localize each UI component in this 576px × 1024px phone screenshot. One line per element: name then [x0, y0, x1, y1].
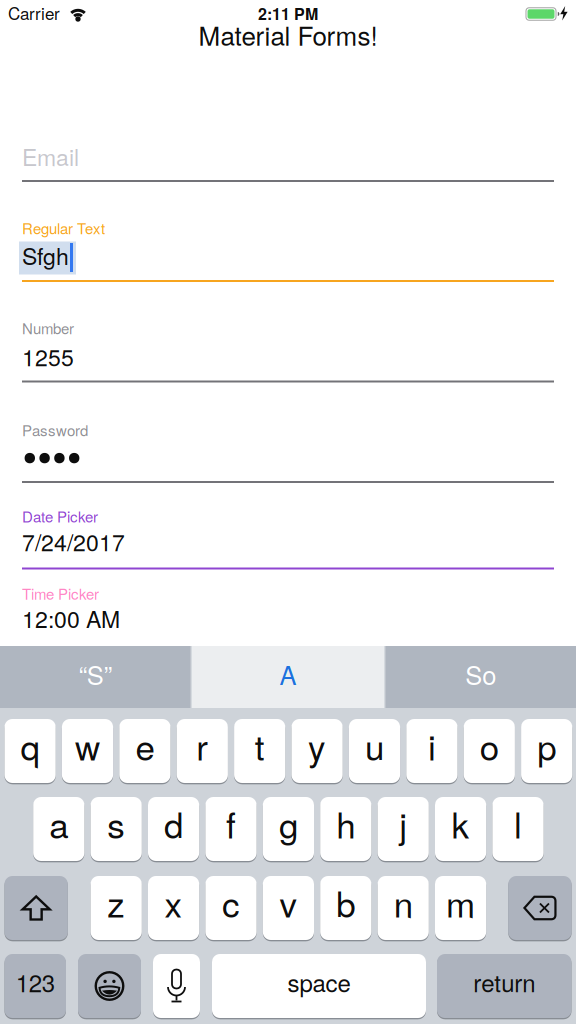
staticText: 123 — [16, 965, 55, 999]
staticText: r — [196, 720, 208, 770]
button[interactable]: Time Picker — [0, 583, 576, 645]
button[interactable]: b — [320, 876, 371, 940]
button[interactable]: j — [378, 797, 429, 861]
button[interactable]: u — [349, 719, 400, 783]
staticText: 1255 — [22, 340, 74, 373]
button[interactable]: l — [492, 797, 544, 861]
staticText: 7/24/2017 — [22, 525, 125, 558]
staticText: Time Picker — [22, 583, 99, 604]
button[interactable]: f — [205, 797, 257, 861]
button[interactable]: h — [320, 797, 371, 861]
staticText: “S” — [79, 656, 112, 692]
staticText: v — [279, 877, 297, 927]
staticText: h — [336, 798, 355, 848]
button[interactable]: c — [205, 876, 257, 940]
staticText: o — [480, 720, 499, 770]
button[interactable]: k — [435, 797, 486, 861]
staticText: s — [107, 798, 125, 848]
button[interactable]: n — [378, 876, 429, 940]
button[interactable]: s — [91, 797, 142, 861]
button[interactable]: a — [33, 797, 84, 861]
staticText: p — [537, 720, 556, 770]
staticText: Sfgh — [22, 239, 69, 271]
staticText: k — [452, 798, 470, 848]
staticText: 12:00 AM — [22, 601, 120, 634]
button[interactable]: p — [521, 719, 572, 783]
button[interactable]: d — [148, 797, 199, 861]
staticText: Password — [22, 419, 88, 440]
button[interactable]: “S” — [0, 646, 190, 708]
staticText: w — [75, 720, 100, 770]
staticText: So — [465, 656, 496, 692]
staticText: Regular Text — [22, 217, 105, 238]
button[interactable]: r — [177, 719, 228, 783]
button[interactable]: Date Picker — [0, 505, 576, 569]
staticText: z — [107, 877, 125, 927]
button[interactable]: t — [234, 719, 285, 783]
staticText: x — [165, 877, 183, 927]
button[interactable]: Numbers — [4, 954, 66, 1018]
button[interactable]: Dictation — [153, 954, 200, 1018]
staticText: n — [394, 877, 413, 927]
button[interactable]: w — [62, 719, 113, 783]
staticText: i — [428, 720, 436, 770]
staticText: return — [473, 965, 535, 999]
button[interactable]: Shift — [4, 876, 68, 940]
button[interactable]: x — [148, 876, 199, 940]
staticText: 2:11 PM — [258, 2, 318, 25]
staticText: b — [336, 877, 355, 927]
staticText: l — [514, 798, 522, 848]
staticText: space — [287, 965, 350, 999]
button[interactable]: Number — [0, 317, 576, 383]
staticText: y — [308, 720, 326, 770]
button[interactable]: g — [263, 797, 314, 861]
staticText: e — [135, 720, 154, 770]
staticText: j — [399, 798, 407, 848]
staticText: Date Picker — [22, 505, 98, 527]
button[interactable]: v — [263, 876, 314, 940]
button[interactable]: space — [212, 954, 426, 1018]
staticText: d — [164, 798, 183, 848]
staticText: u — [365, 720, 384, 770]
staticText: Carrier — [8, 0, 60, 25]
staticText: q — [21, 720, 40, 770]
button[interactable]: return — [437, 954, 571, 1018]
button[interactable]: e — [119, 719, 170, 783]
staticText: Material Forms! — [198, 16, 377, 53]
staticText: Number — [22, 317, 74, 338]
button[interactable]: y — [291, 719, 343, 783]
staticText: c — [222, 877, 240, 927]
button[interactable]: Delete — [508, 876, 572, 940]
button[interactable]: Password — [0, 419, 576, 483]
staticText: t — [255, 720, 265, 770]
staticText: a — [49, 798, 68, 848]
button[interactable]: Email — [0, 130, 576, 182]
button[interactable]: Regular Text — [0, 217, 576, 283]
button[interactable]: q — [4, 719, 56, 783]
staticText: f — [226, 798, 236, 848]
button[interactable]: m — [435, 876, 486, 940]
button[interactable]: o — [464, 719, 515, 783]
button[interactable]: So — [385, 646, 576, 708]
button[interactable]: Emoji — [78, 954, 141, 1018]
button[interactable]: z — [91, 876, 142, 940]
staticText: A — [279, 656, 296, 692]
button[interactable]: A — [192, 646, 384, 708]
staticText: m — [446, 877, 475, 927]
button[interactable]: i — [406, 719, 457, 783]
staticText: g — [279, 798, 298, 848]
staticText: Email — [22, 140, 79, 172]
